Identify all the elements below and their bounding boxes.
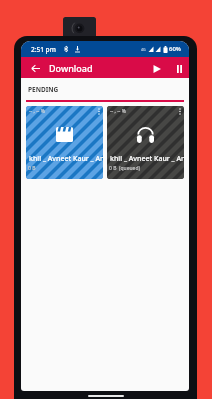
staticText: PENDING xyxy=(28,85,59,94)
button[interactable]: -- , -- % xyxy=(26,106,103,179)
button[interactable]: Resume all downloads xyxy=(149,57,165,78)
staticText: 4G xyxy=(141,47,146,52)
button[interactable]: More options xyxy=(176,106,184,116)
button[interactable]: -- , -- % xyxy=(107,106,184,179)
button[interactable]: Pause all downloads xyxy=(172,57,186,78)
staticText: 0 B xyxy=(28,165,36,172)
staticText: 60% xyxy=(169,45,181,53)
staticText: 2:51 pm xyxy=(31,45,56,54)
staticText: khil _ Avneet Kaur _ An xyxy=(29,154,103,164)
staticText: khil _ Avneet Kaur _ An xyxy=(110,154,184,164)
staticText: 0 B (queued) xyxy=(109,165,140,172)
button[interactable]: Back xyxy=(28,61,42,75)
button[interactable]: More options xyxy=(95,106,103,116)
staticText: -- , -- % xyxy=(29,108,45,115)
staticText: Download xyxy=(49,62,93,74)
staticText: -- , -- % xyxy=(110,108,126,115)
